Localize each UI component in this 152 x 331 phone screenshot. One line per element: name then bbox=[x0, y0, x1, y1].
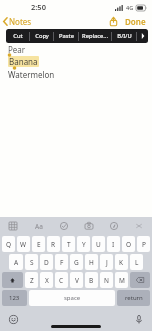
button[interactable]: P bbox=[137, 236, 150, 252]
staticText: P bbox=[142, 240, 146, 249]
button[interactable]: M bbox=[115, 272, 128, 288]
button[interactable]: space bbox=[29, 290, 115, 306]
staticText: Banana bbox=[9, 56, 38, 67]
button[interactable]: S bbox=[25, 254, 38, 270]
staticText: A bbox=[14, 258, 19, 267]
button[interactable]: Table bbox=[6, 219, 20, 233]
staticText: S bbox=[30, 258, 34, 267]
staticText: return bbox=[125, 294, 143, 302]
button[interactable]: H bbox=[85, 254, 98, 270]
button[interactable]: L bbox=[130, 254, 143, 270]
button[interactable]: C bbox=[55, 272, 68, 288]
button[interactable]: More bbox=[137, 29, 148, 43]
button[interactable]: J bbox=[100, 254, 113, 270]
staticText: G bbox=[74, 258, 79, 267]
button[interactable]: E bbox=[32, 236, 45, 252]
button[interactable]: O bbox=[122, 236, 135, 252]
staticText: B/I/U bbox=[117, 32, 132, 40]
staticText: R bbox=[51, 240, 56, 249]
button[interactable]: Paste bbox=[54, 29, 78, 43]
button[interactable]: Camera bbox=[82, 219, 96, 233]
staticText: U bbox=[96, 240, 101, 249]
staticText: I bbox=[112, 240, 115, 249]
button[interactable]: B bbox=[85, 272, 98, 288]
staticText: Paste bbox=[59, 32, 74, 40]
staticText: F bbox=[60, 258, 64, 267]
button[interactable]: Cut bbox=[6, 29, 29, 43]
button[interactable]: K bbox=[115, 254, 128, 270]
button[interactable]: F bbox=[55, 254, 68, 270]
button[interactable]: 123 bbox=[2, 290, 27, 306]
button[interactable]: G bbox=[70, 254, 83, 270]
staticText: space bbox=[64, 294, 81, 302]
button[interactable]: Share bbox=[107, 15, 120, 28]
staticText: Z bbox=[30, 276, 34, 285]
button[interactable]: W bbox=[17, 236, 30, 252]
button[interactable]: Aa bbox=[32, 219, 46, 233]
staticText: O bbox=[126, 240, 132, 249]
button[interactable]: Notes bbox=[3, 16, 32, 27]
staticText: J bbox=[106, 258, 108, 267]
staticText: V bbox=[75, 276, 79, 285]
button[interactable]: B/I/U bbox=[112, 29, 136, 43]
button[interactable]: Emoji bbox=[6, 312, 20, 326]
staticText: K bbox=[119, 258, 124, 267]
button[interactable]: Z bbox=[25, 272, 38, 288]
staticText: X bbox=[45, 276, 49, 285]
button[interactable]: Hide keyboard bbox=[132, 219, 146, 233]
staticText: Done bbox=[125, 16, 146, 26]
staticText: W bbox=[20, 240, 27, 249]
button[interactable]: R bbox=[47, 236, 60, 252]
button[interactable]: Dictation bbox=[132, 312, 146, 326]
button[interactable]: Y bbox=[77, 236, 90, 252]
staticText: Q bbox=[6, 240, 12, 249]
staticText: 123 bbox=[9, 294, 20, 302]
button[interactable]: T bbox=[62, 236, 75, 252]
button[interactable]: Replace... bbox=[79, 29, 111, 43]
staticText: E bbox=[37, 240, 41, 249]
button[interactable]: X bbox=[40, 272, 53, 288]
button[interactable]: U bbox=[92, 236, 105, 252]
staticText: Cut bbox=[13, 32, 23, 40]
staticText: Notes bbox=[9, 16, 32, 27]
button[interactable]: Q bbox=[2, 236, 15, 252]
button[interactable]: Checklist bbox=[57, 219, 71, 233]
staticText: 4G bbox=[126, 4, 134, 11]
staticText: Copy bbox=[35, 32, 49, 40]
staticText: H bbox=[89, 258, 94, 267]
button[interactable]: return bbox=[117, 290, 150, 306]
button[interactable]: D bbox=[40, 254, 53, 270]
staticText: N bbox=[104, 276, 109, 285]
staticText: M bbox=[119, 276, 125, 285]
button[interactable]: I bbox=[107, 236, 120, 252]
staticText: Y bbox=[82, 240, 86, 249]
button[interactable]: Shift bbox=[2, 272, 23, 288]
button[interactable]: Copy bbox=[30, 29, 53, 43]
staticText: Aa bbox=[35, 222, 43, 231]
button[interactable]: V bbox=[70, 272, 83, 288]
button[interactable]: A bbox=[9, 254, 23, 270]
staticText: L bbox=[135, 258, 139, 267]
button[interactable]: Backspace bbox=[130, 272, 150, 288]
staticText: T bbox=[67, 240, 71, 249]
staticText: C bbox=[59, 276, 64, 285]
staticText: Pear bbox=[8, 44, 26, 55]
staticText: Replace... bbox=[82, 32, 108, 40]
button[interactable]: Markup bbox=[107, 219, 121, 233]
staticText: 2:50 bbox=[31, 2, 46, 12]
staticText: B bbox=[89, 276, 94, 285]
staticText: Watermelon bbox=[8, 69, 55, 80]
button[interactable]: Done bbox=[123, 14, 148, 28]
staticText: D bbox=[44, 258, 49, 267]
button[interactable]: N bbox=[100, 272, 113, 288]
